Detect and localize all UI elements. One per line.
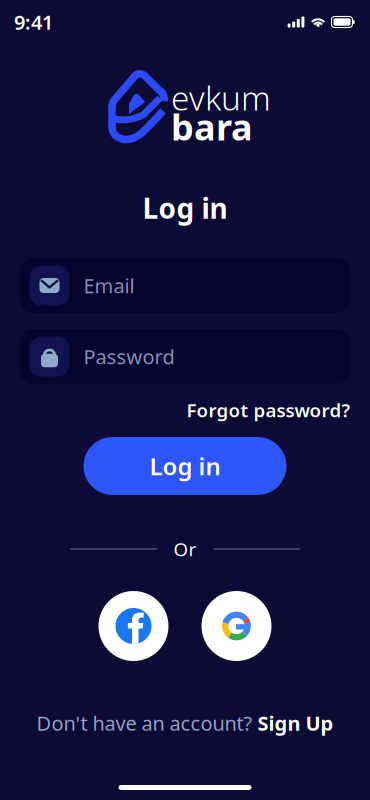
staticText: bara — [171, 103, 253, 150]
staticText: 9:41 — [14, 9, 53, 35]
button[interactable]: Log in — [83, 437, 286, 495]
button[interactable]: Forgot password? — [186, 398, 350, 422]
staticText: Email — [83, 272, 134, 299]
staticText: Password — [83, 343, 174, 370]
staticText: Forgot password? — [186, 398, 350, 422]
staticText: Sign Up — [257, 710, 333, 736]
button[interactable]: Sign in with Facebook — [98, 591, 168, 661]
staticText: evkum — [171, 75, 271, 120]
staticText: Don't have an account? — [36, 710, 252, 736]
button[interactable]: Sign in with Google — [201, 591, 271, 661]
button[interactable]: Email — [19, 258, 350, 313]
button[interactable]: Password — [19, 329, 350, 384]
staticText: Log in — [149, 450, 220, 482]
staticText: Or — [173, 537, 196, 561]
staticText: Log in — [142, 189, 227, 227]
button[interactable]: Don't have an account? — [36, 712, 333, 734]
